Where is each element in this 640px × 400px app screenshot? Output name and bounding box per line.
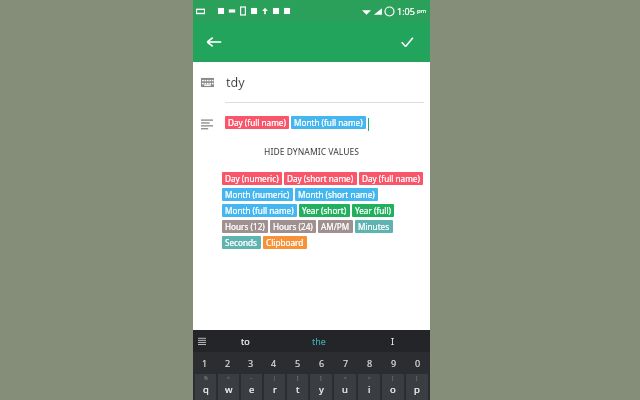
staticText: Hours (12) (225, 221, 265, 232)
staticText: o (390, 383, 396, 396)
staticText: t (296, 383, 300, 396)
button[interactable]: Month (full name) (222, 204, 297, 217)
button[interactable]: ) (406, 374, 428, 400)
staticText: < (344, 375, 347, 381)
button[interactable]: Back (201, 29, 227, 55)
button[interactable]: Month (short name) (295, 188, 378, 201)
staticText: 1 (202, 357, 208, 369)
staticText: p (414, 383, 420, 396)
button[interactable]: HIDE DYNAMIC VALUES (193, 146, 430, 158)
button[interactable]: ^ (218, 374, 239, 400)
button[interactable]: Day (numeric) (222, 172, 282, 185)
staticText: % (204, 375, 208, 381)
staticText: Month (numeric) (225, 189, 290, 200)
button[interactable]: 9 (382, 352, 406, 374)
staticText: w (225, 383, 233, 396)
staticText: Day (numeric) (225, 173, 279, 184)
button[interactable]: Clipboard (263, 236, 307, 249)
staticText: 5 (295, 357, 301, 369)
button[interactable]: | (264, 374, 285, 400)
staticText: 0 (415, 357, 421, 369)
button[interactable]: Day (short name) (284, 172, 357, 185)
staticText: e (249, 383, 255, 396)
staticText: 2 (225, 357, 231, 369)
staticText: [ (297, 375, 299, 381)
staticText: tdy (226, 74, 245, 91)
staticText: Month (short name) (298, 189, 375, 200)
button[interactable]: Month (full name) (291, 116, 366, 129)
staticText: 9 (391, 357, 397, 369)
button[interactable]: Keyboard menu (196, 335, 208, 347)
button[interactable]: 3 (239, 352, 262, 374)
button[interactable]: % (195, 374, 216, 400)
staticText: i (368, 383, 371, 396)
staticText: Clipboard (266, 237, 304, 248)
button[interactable]: AM/PM (318, 220, 353, 233)
staticText: ^ (227, 375, 230, 381)
staticText: ~ (250, 375, 253, 381)
staticText: > (368, 375, 371, 381)
button[interactable]: Day (full name) (359, 172, 423, 185)
button[interactable]: 4 (262, 352, 286, 374)
button[interactable]: I (356, 335, 430, 347)
staticText: r (273, 383, 277, 396)
staticText: ( (392, 375, 394, 381)
button[interactable]: Done (394, 29, 420, 55)
staticText: 8 (367, 357, 373, 369)
button[interactable]: Year (full) (352, 204, 394, 217)
staticText: 4 (271, 357, 277, 369)
staticText: to (241, 335, 250, 347)
staticText: Day (full name) (362, 173, 420, 184)
button[interactable]: to (208, 335, 282, 347)
staticText: u (342, 383, 348, 396)
button[interactable]: 7 (334, 352, 358, 374)
staticText: the (312, 335, 326, 347)
button[interactable]: Year (short) (299, 204, 350, 217)
staticText: Minutes (358, 221, 390, 232)
button[interactable]: the (282, 335, 356, 347)
button[interactable]: 1 (193, 352, 216, 374)
button[interactable]: 2 (216, 352, 239, 374)
button[interactable]: 8 (358, 352, 382, 374)
button[interactable]: > (358, 374, 380, 400)
button[interactable]: Day (full name) (225, 116, 289, 129)
staticText: ) (416, 375, 418, 381)
button[interactable]: ~ (241, 374, 262, 400)
staticText: Seconds (225, 237, 258, 248)
staticText: I (391, 335, 395, 347)
button[interactable]: Month (numeric) (222, 188, 293, 201)
staticText: Hours (24) (273, 221, 313, 232)
staticText: 1:05 (397, 5, 415, 17)
button[interactable]: Hours (24) (270, 220, 316, 233)
staticText: Month (full name) (294, 117, 363, 128)
staticText: pm (417, 7, 427, 15)
staticText: 3 (248, 357, 254, 369)
staticText: 7 (343, 357, 349, 369)
button[interactable]: [ (287, 374, 308, 400)
staticText: q (203, 383, 209, 396)
button[interactable]: ( (382, 374, 404, 400)
staticText: Day (short name) (287, 173, 354, 184)
staticText: HIDE DYNAMIC VALUES (264, 146, 359, 158)
staticText: Year (short) (302, 205, 347, 216)
button[interactable]: tdy (193, 74, 430, 91)
button[interactable]: ] (310, 374, 332, 400)
staticText: y (319, 383, 324, 396)
button[interactable]: 5 (286, 352, 310, 374)
staticText: ] (320, 375, 322, 381)
staticText: Day (full name) (228, 117, 286, 128)
button[interactable]: Hours (12) (222, 220, 268, 233)
staticText: Year (full) (355, 205, 391, 216)
button[interactable]: 6 (310, 352, 334, 374)
staticText: | (273, 375, 276, 381)
button[interactable]: Minutes (355, 220, 393, 233)
button[interactable]: Seconds (222, 236, 261, 249)
button[interactable]: 0 (406, 352, 430, 374)
staticText: AM/PM (321, 221, 350, 232)
staticText: Month (full name) (225, 205, 294, 216)
staticText: 6 (319, 357, 325, 369)
button[interactable]: < (334, 374, 356, 400)
